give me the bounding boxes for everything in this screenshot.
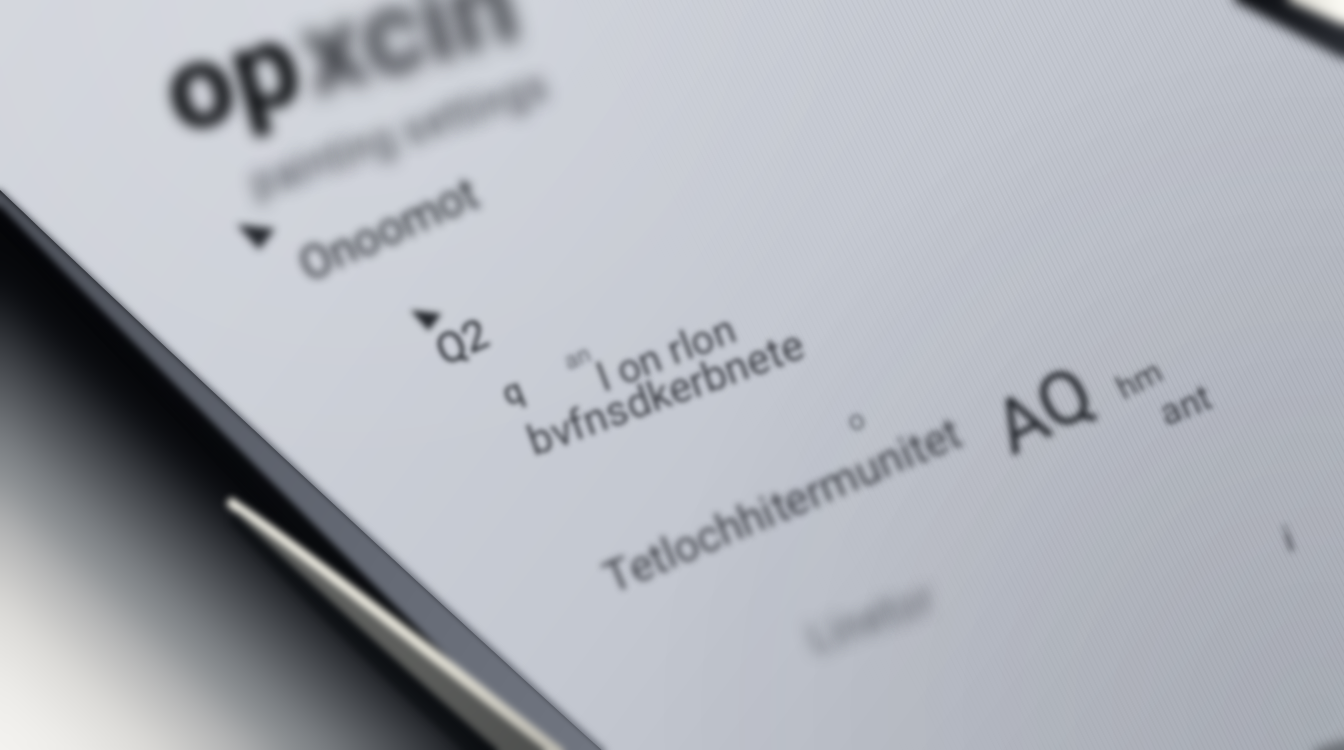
button[interactable]: Phone screen macro photo	[0, 0, 1344, 750]
